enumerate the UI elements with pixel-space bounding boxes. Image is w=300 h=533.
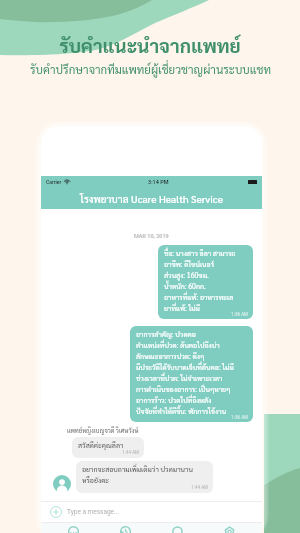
staticText: 1:36 AM — [164, 312, 248, 317]
staticText: รับคำปรึกษาจากทีมแพทย์ผู้เชี่ยวชาญผ่านระ… — [30, 62, 271, 77]
staticText: รับคำแนะนำจากแพทย์ — [59, 33, 241, 58]
staticText: 1:44 AM — [78, 450, 139, 455]
staticText: MAR 10, 2019 — [134, 233, 169, 239]
staticText: อาการสำคัญ: ปวดคอ ตำแหน่งที่ปวด: ต้นคอไป… — [136, 330, 234, 415]
button[interactable]: Settings — [203, 523, 255, 533]
button[interactable]: Chat — [48, 523, 99, 533]
staticText: 1:36 AM — [136, 415, 248, 420]
staticText: 1:44 AM — [82, 485, 208, 490]
button[interactable]: สวัสดีค่ะคุณลีลา — [72, 437, 144, 458]
staticText: Carrier — [46, 179, 62, 185]
button[interactable]: ชื่อ: นางสาว ลีลา สามารถ อาชีพ: ดีไซน์เน… — [158, 245, 253, 319]
staticText: อยากจะสอบถามเพิ่มเติมว่า ปวดมานาน หรือยั… — [82, 465, 193, 485]
staticText: สวัสดีค่ะคุณลีลา — [78, 441, 124, 450]
button[interactable]: อาการสำคัญ: ปวดคอ ตำแหน่งที่ปวด: ต้นคอไป… — [130, 326, 253, 422]
button[interactable]: History — [99, 523, 151, 533]
staticText: แพทย์หญิงเบญจวดี วิเศษวังษ์ — [67, 427, 139, 435]
staticText: โรงพยาบาล Ucare Health Service — [80, 192, 223, 205]
button[interactable]: Explore — [151, 523, 203, 533]
button[interactable]: โรงพยาบาล Ucare Health Service — [41, 187, 262, 209]
staticText: ชื่อ: นางสาว ลีลา สามารถ อาชีพ: ดีไซน์เน… — [164, 249, 236, 312]
button[interactable]: อยากจะสอบถามเพิ่มเติมว่า ปวดมานาน หรือยั… — [76, 461, 213, 493]
button[interactable]: Add attachment — [50, 506, 62, 518]
staticText: Type a message... — [67, 508, 120, 516]
staticText: 3:14 PM — [148, 179, 169, 185]
other: Doctor avatar — [53, 475, 71, 493]
